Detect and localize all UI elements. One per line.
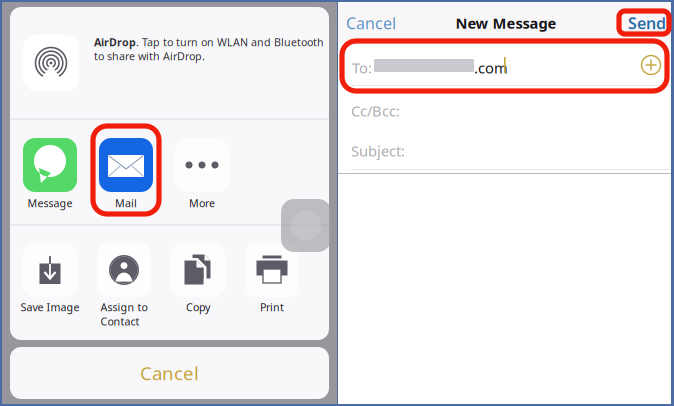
staticText: AirDrop. Tap to turn on WLAN and Bluetoo… xyxy=(94,35,324,49)
staticText: Assign to Contact xyxy=(100,300,147,328)
staticText: New Message xyxy=(455,13,556,33)
staticText: Mail xyxy=(115,196,137,210)
staticText: Subject: xyxy=(351,141,405,160)
button[interactable]: Subject: xyxy=(338,127,671,169)
button[interactable]: To: xyxy=(338,43,671,86)
button[interactable]: Print xyxy=(235,243,309,326)
staticText: Cc/Bcc: xyxy=(351,101,400,120)
button[interactable]: Cancel xyxy=(346,6,406,40)
button[interactable]: Send xyxy=(622,9,666,37)
staticText: .com xyxy=(474,58,508,77)
staticText: Cancel xyxy=(346,12,396,34)
staticText: Print xyxy=(260,300,284,314)
staticText: to share with AirDrop. xyxy=(94,49,205,63)
button[interactable]: AirDrop. Tap to turn on WLAN and Bluetoo… xyxy=(94,36,339,66)
button[interactable]: Copy xyxy=(161,243,235,326)
staticText: Message xyxy=(27,196,72,210)
staticText: Cancel xyxy=(140,361,199,385)
staticText: More xyxy=(189,196,215,210)
button[interactable]: Message xyxy=(12,138,88,222)
staticText: Send xyxy=(628,12,666,34)
staticText: To: xyxy=(352,58,372,77)
staticText: Save Image xyxy=(20,300,79,314)
button[interactable]: Cancel xyxy=(10,347,329,399)
button[interactable]: More xyxy=(164,138,240,222)
button[interactable]: Cc/Bcc: xyxy=(338,86,671,128)
button[interactable]: Save Image xyxy=(13,243,87,326)
button[interactable]: Assign to Contact xyxy=(87,243,161,326)
button[interactable]: Mail xyxy=(88,138,164,222)
button[interactable]: Add recipient xyxy=(636,50,666,80)
button[interactable] xyxy=(10,7,329,119)
staticText: Copy xyxy=(186,300,210,314)
